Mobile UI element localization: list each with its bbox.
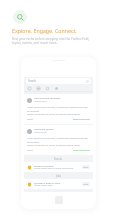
staticText: Reply <box>27 118 33 121</box>
button[interactable]: Tab 2 <box>36 86 41 91</box>
staticText: Open <box>83 183 89 186</box>
staticText: Lorem Ipsum <box>34 131 47 134</box>
button[interactable]: Marketing Update <box>24 125 93 155</box>
staticText: Search <box>28 79 37 83</box>
button[interactable]: Tab 3 <box>45 86 50 91</box>
staticText: Events <box>54 157 63 161</box>
button[interactable]: Tab 1 <box>27 86 32 91</box>
staticText: Lorem ipsum dolor sit amet, consectetur … <box>27 137 90 146</box>
staticText: Marketing Update <box>34 128 54 131</box>
staticText: Lorem ipsum dolor sit amet consectetur <box>34 167 74 170</box>
button[interactable]: Official Crowd Campaign <box>24 94 93 124</box>
staticText: Reply <box>27 149 33 152</box>
staticText: Official Crowd Campaign <box>34 97 61 100</box>
button[interactable]: Open <box>82 182 90 186</box>
staticText: Explore. Engage. Connect. <box>12 27 77 34</box>
staticText: Read more now <box>73 118 90 121</box>
staticText: Open <box>83 166 89 169</box>
staticText: Lorem Ipsum <box>34 100 47 103</box>
staticText: Jobs <box>56 174 62 178</box>
staticText: Lorem ipsum dolor <box>34 184 53 187</box>
button[interactable]: Open <box>82 165 90 169</box>
button[interactable]: Search <box>26 78 91 84</box>
staticText: Budget Proposal <box>34 164 54 167</box>
button[interactable]: Search logo <box>13 10 27 24</box>
button[interactable]: Quarterly Report 2023 <box>24 179 93 189</box>
button[interactable]: Budget Proposal <box>24 162 93 172</box>
staticText: Quarterly Report 2023 <box>34 181 61 184</box>
staticText: Read more now <box>73 149 90 152</box>
staticText: Lorem ipsum dolor sit amet, consectetur … <box>27 106 90 115</box>
button[interactable]: Tab 4 <box>54 86 59 91</box>
staticText: Find your niche before stepping into the… <box>12 37 90 45</box>
